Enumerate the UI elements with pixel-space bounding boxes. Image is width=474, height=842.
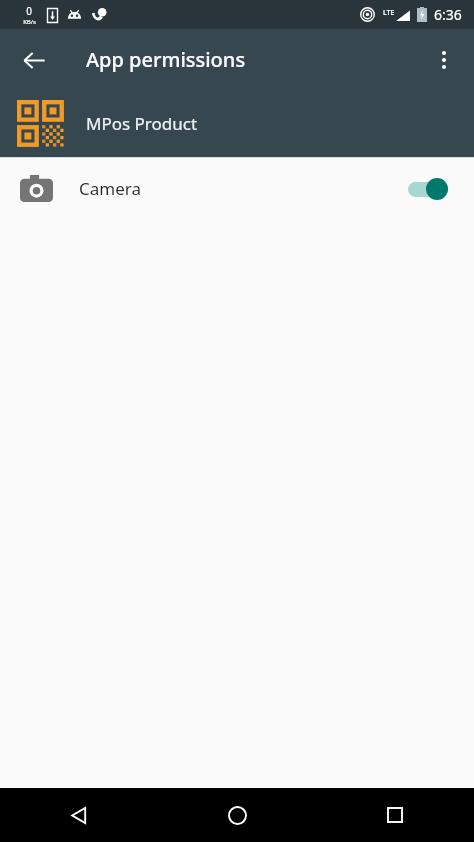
staticText: Camera	[79, 177, 141, 200]
staticText: 6:36	[434, 5, 462, 24]
button[interactable]: Navigate up	[10, 36, 58, 84]
button[interactable]: MPos Product	[0, 90, 474, 157]
button[interactable]: Back	[0, 788, 158, 842]
staticText: App permissions	[86, 46, 246, 73]
staticText: MPos Product	[86, 112, 198, 135]
staticText: KB/s	[23, 18, 36, 26]
staticText: 0	[26, 4, 32, 18]
staticText: LTE	[383, 8, 395, 18]
button[interactable]: Camera	[0, 158, 474, 219]
button[interactable]: Camera permission toggle	[404, 173, 456, 205]
button[interactable]: More options	[420, 36, 468, 84]
button[interactable]: Recent apps	[316, 788, 474, 842]
button[interactable]: Home	[158, 788, 316, 842]
